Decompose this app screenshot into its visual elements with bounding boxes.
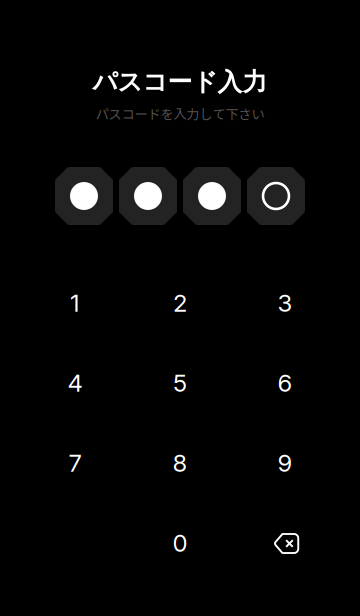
staticText: 9 (277, 448, 292, 477)
staticText: 5 (173, 368, 187, 397)
staticText: パスコード入力 (92, 66, 267, 98)
staticText: 3 (277, 288, 292, 317)
button[interactable]: 4 (22, 343, 127, 423)
staticText: 4 (67, 368, 82, 397)
staticText: 7 (68, 448, 81, 477)
button[interactable]: Delete (232, 503, 337, 583)
staticText: パスコードを入力して下さい (95, 104, 264, 123)
staticText: 2 (173, 288, 187, 317)
staticText: 6 (277, 368, 292, 397)
button[interactable]: 8 (127, 423, 232, 503)
button[interactable]: 5 (127, 343, 232, 423)
button[interactable]: 6 (232, 343, 337, 423)
button[interactable]: 3 (232, 263, 337, 343)
staticText: 1 (70, 288, 80, 317)
staticText: 8 (172, 448, 187, 477)
button[interactable]: 2 (127, 263, 232, 343)
button[interactable]: 1 (22, 263, 127, 343)
button[interactable]: 9 (232, 423, 337, 503)
staticText: 0 (172, 528, 187, 557)
button[interactable]: 0 (127, 503, 232, 583)
button[interactable]: 7 (22, 423, 127, 503)
